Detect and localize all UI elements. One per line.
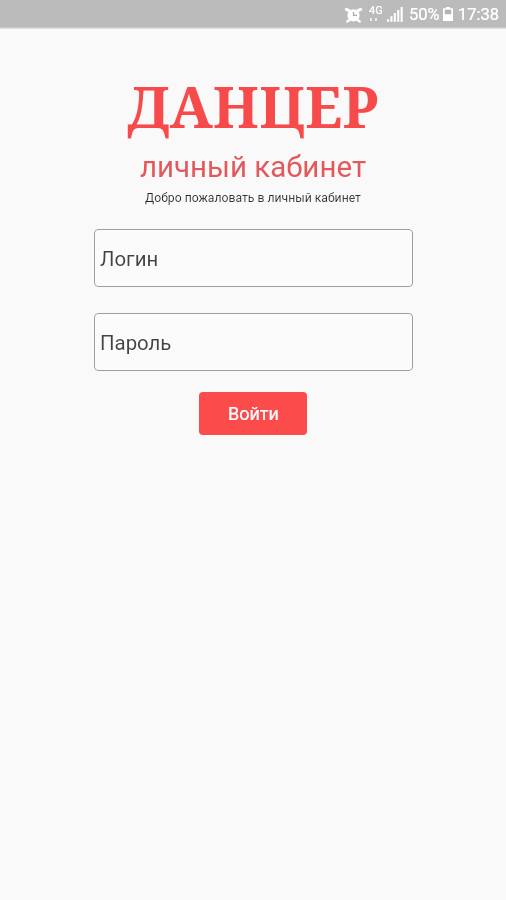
staticText: Логин [100,247,159,271]
staticText: 4G [369,4,383,17]
staticText: личный кабинет [0,150,506,185]
staticText: Добро пожаловать в личный кабинет [0,191,506,205]
staticText: 17:38 [458,5,500,24]
staticText: ДАНЦЕР [0,67,506,145]
other: Alarm [346,7,361,22]
other: Signal strength [387,7,403,22]
other: Battery 50 percent [443,7,453,21]
staticText: Пароль [100,331,172,355]
button[interactable]: Логин [94,229,413,287]
staticText: Войти [228,403,279,424]
staticText: 50% [409,5,440,24]
button[interactable]: Войти [199,392,307,435]
button[interactable]: Пароль [94,313,413,371]
